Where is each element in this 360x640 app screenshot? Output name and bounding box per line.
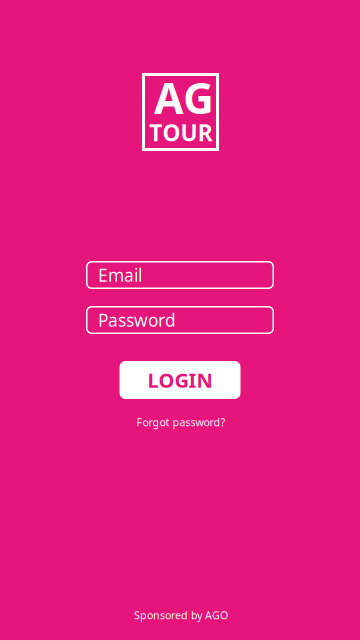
- staticText: TOUR: [149, 117, 213, 147]
- staticText: Password: [98, 308, 176, 331]
- staticText: Forgot password?: [136, 415, 225, 429]
- button[interactable]: LOGIN: [119, 361, 240, 399]
- button[interactable]: Password: [86, 306, 274, 334]
- staticText: AG: [154, 69, 214, 126]
- staticText: Sponsored by AGO: [134, 608, 228, 622]
- staticText: LOGIN: [147, 367, 212, 393]
- button[interactable]: Email: [86, 261, 274, 289]
- button[interactable]: Forgot password?: [126, 410, 235, 434]
- staticText: Email: [98, 263, 142, 286]
